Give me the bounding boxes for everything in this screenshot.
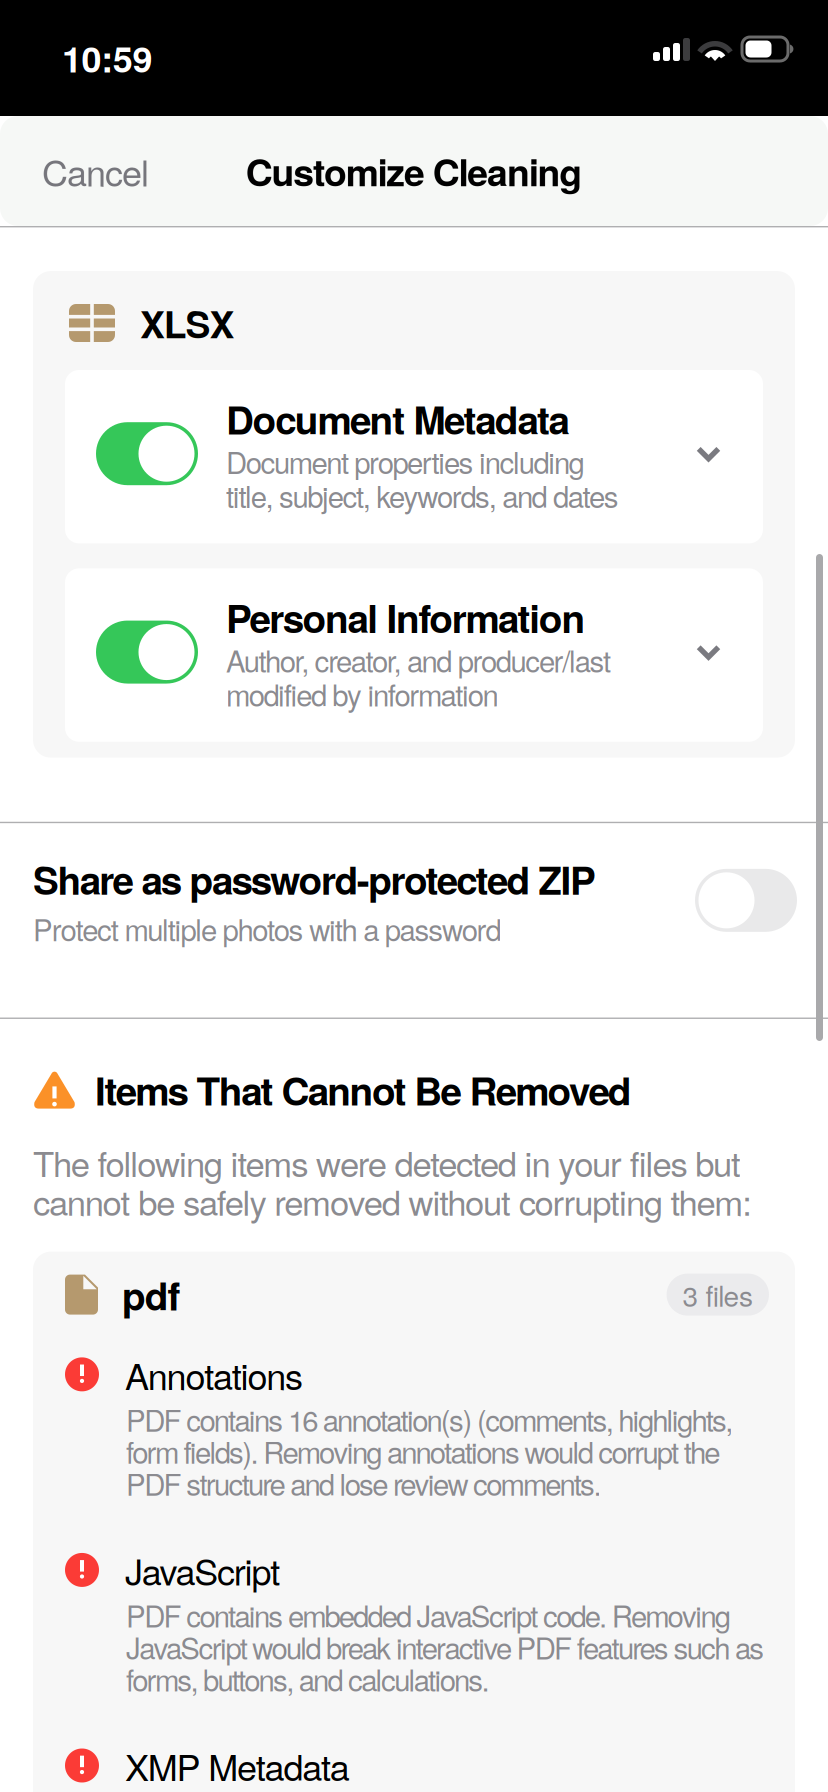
button[interactable]: Document Metadata [65,370,763,543]
staticText: Share as password-protected ZIP [33,851,596,907]
staticText: Document properties including title, sub… [226,440,619,516]
staticText: 3 files [683,1274,753,1315]
staticText: Protect multiple photos with a password [33,907,501,949]
staticText: JavaScript [125,1544,280,1596]
staticText: Cancel [42,145,149,197]
staticText: PDF contains embedded JavaScript code. R… [126,1594,764,1700]
staticText: Personal Information [226,589,585,645]
staticText: Annotations [125,1349,303,1400]
staticText: XLSX [140,296,234,350]
staticText: Items That Cannot Be Removed [95,1062,632,1117]
staticText: pdf [122,1267,181,1322]
staticText: Customize Cleaning [246,144,582,198]
staticText: PDF contains 16 annotation(s) (comments,… [126,1398,733,1504]
button[interactable]: Personal Information [65,568,763,742]
button[interactable]: Cancel [42,129,179,213]
staticText: Author, creator, and producer/last modif… [226,639,611,715]
button[interactable]: Share as password-protected ZIP [0,823,828,1018]
staticText: XMP Metadata [125,1740,350,1791]
staticText: 10:59 [62,32,152,84]
staticText: The following items were detected in you… [33,1137,752,1226]
staticText: Document Metadata [226,391,570,446]
